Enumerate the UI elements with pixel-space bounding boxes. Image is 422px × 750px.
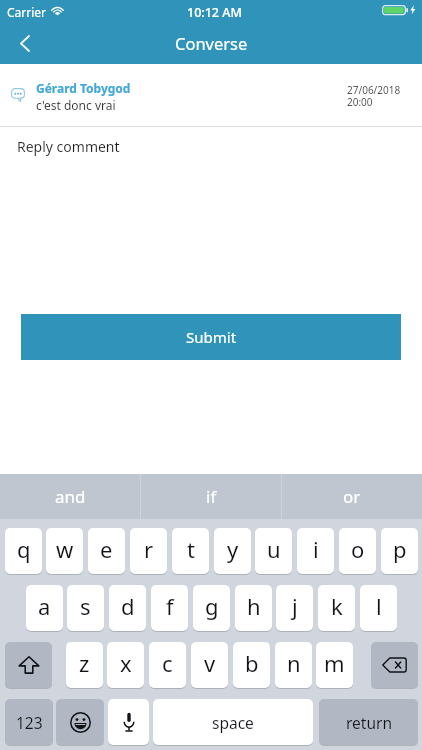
button[interactable]: x (107, 642, 144, 688)
button[interactable]: Delete (371, 642, 418, 688)
staticText: c (162, 648, 173, 678)
button[interactable]: d (109, 585, 146, 631)
staticText: m (324, 648, 345, 678)
button[interactable]: f (151, 585, 188, 631)
button[interactable]: q (5, 528, 42, 574)
button[interactable]: o (339, 528, 376, 574)
button[interactable]: s (67, 585, 104, 631)
staticText: or (343, 485, 361, 508)
button[interactable]: b (233, 642, 270, 688)
staticText: Carrier (7, 4, 47, 20)
staticText: h (247, 591, 261, 621)
staticText: o (351, 534, 365, 564)
button[interactable]: and (0, 474, 140, 519)
staticText: i (313, 534, 319, 564)
button[interactable]: r (130, 528, 167, 574)
staticText: j (292, 591, 298, 621)
staticText: u (267, 534, 281, 564)
button[interactable]: Submit (21, 314, 401, 360)
button[interactable]: u (255, 528, 292, 574)
staticText: Submit (186, 327, 237, 347)
staticText: x (120, 648, 132, 678)
staticText: s (80, 591, 91, 621)
staticText: a (38, 591, 51, 621)
button[interactable]: e (88, 528, 125, 574)
button[interactable]: w (46, 528, 83, 574)
button[interactable]: z (66, 642, 103, 688)
button[interactable]: l (360, 585, 397, 631)
staticText: space (212, 712, 254, 733)
staticText: Reply comment (17, 137, 120, 156)
staticText: g (205, 591, 219, 621)
button[interactable]: return (319, 699, 418, 745)
button[interactable]: t (172, 528, 209, 574)
staticText: k (331, 591, 343, 621)
button[interactable]: or (282, 474, 422, 519)
button[interactable]: k (318, 585, 355, 631)
button[interactable]: Shift (5, 642, 52, 688)
staticText: d (121, 591, 135, 621)
button[interactable]: y (214, 528, 251, 574)
button[interactable]: c (149, 642, 186, 688)
staticText: c'est donc vrai (36, 97, 116, 113)
staticText: 123 (16, 712, 43, 733)
staticText: and (55, 485, 86, 508)
staticText: 27/06/2018 (347, 83, 401, 97)
button[interactable]: if (141, 474, 281, 519)
staticText: b (245, 648, 259, 678)
button[interactable]: a (26, 585, 63, 631)
staticText: f (166, 591, 174, 621)
staticText: if (206, 485, 217, 508)
staticText: p (393, 534, 407, 564)
staticText: y (227, 534, 239, 564)
staticText: e (100, 534, 113, 564)
button[interactable]: p (381, 528, 418, 574)
staticText: Gérard Tobygod (36, 80, 131, 96)
staticText: v (204, 648, 216, 678)
button[interactable]: n (275, 642, 312, 688)
staticText: t (187, 534, 195, 564)
button[interactable]: g (193, 585, 230, 631)
button[interactable]: i (297, 528, 334, 574)
staticText: q (17, 534, 31, 564)
staticText: return (346, 712, 392, 733)
button[interactable]: Back (4, 22, 46, 64)
button[interactable]: j (276, 585, 313, 631)
staticText: z (79, 648, 90, 678)
button[interactable]: Emoji keyboard (56, 699, 104, 745)
staticText: w (56, 534, 74, 564)
staticText: n (287, 648, 301, 678)
staticText: 20:00 (347, 95, 373, 109)
button[interactable]: 123 (5, 699, 53, 745)
button[interactable]: h (235, 585, 272, 631)
button[interactable]: Gérard Tobygod (0, 64, 422, 126)
staticText: r (144, 534, 154, 564)
button[interactable]: Dictation (108, 699, 149, 745)
button[interactable]: v (191, 642, 228, 688)
staticText: 10:12 AM (187, 4, 242, 21)
button[interactable]: m (316, 642, 353, 688)
button[interactable]: space (153, 699, 313, 745)
staticText: Converse (175, 32, 248, 54)
staticText: l (376, 591, 382, 621)
